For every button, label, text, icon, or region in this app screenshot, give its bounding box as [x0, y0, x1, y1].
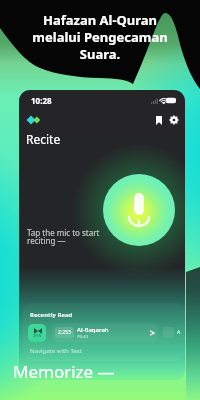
staticText: Recite [26, 131, 61, 147]
staticText: Navigate with Text [30, 347, 82, 355]
staticText: Al-Baqarah [77, 326, 109, 334]
button[interactable]: More [163, 327, 174, 338]
staticText: 10:28 [31, 95, 52, 106]
button[interactable]: 2:253 [52, 323, 158, 342]
staticText: Hafazan Al-Quran melalui Pengecaman Suar… [0, 11, 200, 63]
staticText: Memorize — [13, 360, 115, 383]
staticText: Tap the mic to start reciting — [27, 227, 100, 246]
staticText: PG 42 [77, 334, 88, 339]
staticText: A [177, 329, 181, 336]
button[interactable]: Bookmarks [152, 113, 166, 127]
button[interactable]: OPEN [28, 324, 46, 342]
staticText: OPEN [33, 334, 42, 338]
button[interactable]: Settings [167, 113, 181, 127]
staticText: 2:253 [58, 329, 71, 336]
staticText: Recently Read [30, 311, 73, 319]
